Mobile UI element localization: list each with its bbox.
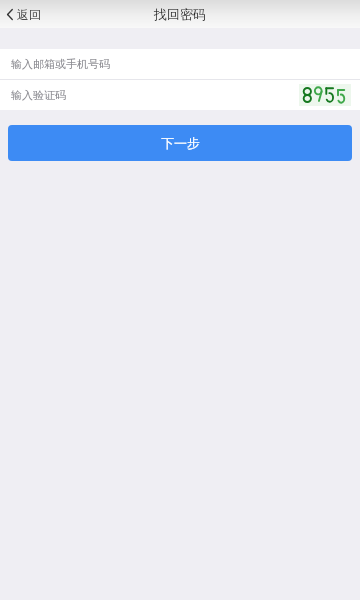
button[interactable]: 下一步	[8, 125, 352, 161]
button[interactable]: 输入验证码	[0, 80, 360, 110]
staticText: 返回	[17, 7, 41, 22]
button[interactable]: Refresh verification code	[299, 84, 351, 106]
button[interactable]: 返回	[0, 0, 53, 28]
button[interactable]: 输入邮箱或手机号码	[0, 49, 360, 79]
staticText: 找回密码	[154, 6, 206, 22]
staticText: 输入验证码	[11, 88, 66, 102]
staticText: 输入邮箱或手机号码	[11, 57, 110, 71]
staticText: 下一步	[161, 135, 200, 151]
